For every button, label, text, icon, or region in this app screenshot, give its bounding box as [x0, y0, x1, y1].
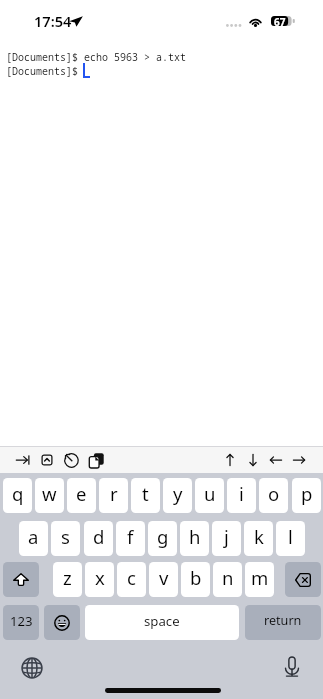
button[interactable]: f — [116, 521, 145, 556]
staticText: c — [127, 565, 136, 590]
button[interactable]: r — [99, 478, 128, 513]
button[interactable]: Paste — [85, 447, 107, 473]
button[interactable]: b — [181, 562, 210, 597]
staticText: k — [254, 524, 264, 549]
staticText: q — [12, 481, 24, 506]
staticText: g — [157, 524, 169, 549]
button[interactable]: v — [149, 562, 178, 597]
staticText: w — [42, 481, 57, 506]
staticText: 67 — [274, 15, 286, 29]
staticText: t — [142, 481, 149, 506]
staticText: [Documents]$ echo 5963 > a.txt — [6, 50, 186, 64]
staticText: a — [28, 524, 39, 549]
button[interactable]: Emoji — [44, 605, 80, 640]
button[interactable]: i — [227, 478, 256, 513]
staticText: 123 — [10, 612, 33, 630]
button[interactable]: l — [276, 521, 305, 556]
staticText: o — [268, 481, 280, 506]
button[interactable]: y — [163, 478, 192, 513]
button[interactable]: k — [244, 521, 273, 556]
staticText: b — [190, 565, 202, 590]
button[interactable]: m — [245, 562, 274, 597]
staticText: return — [264, 612, 302, 629]
button[interactable]: h — [180, 521, 209, 556]
staticText: v — [159, 565, 169, 590]
button[interactable]: Arrow down — [242, 447, 264, 473]
staticText: z — [63, 565, 72, 590]
staticText: j — [224, 524, 229, 549]
staticText: x — [95, 565, 105, 590]
button[interactable]: q — [3, 478, 32, 513]
button[interactable]: s — [51, 521, 80, 556]
staticText: d — [93, 524, 105, 549]
button[interactable]: o — [259, 478, 288, 513]
staticText: m — [251, 565, 269, 590]
button[interactable]: e — [67, 478, 96, 513]
button[interactable]: Arrow right — [288, 447, 310, 473]
button[interactable]: Shift — [3, 562, 39, 597]
button[interactable]: x — [85, 562, 114, 597]
button[interactable]: n — [213, 562, 242, 597]
button[interactable]: Arrow up — [219, 447, 241, 473]
button[interactable]: g — [148, 521, 177, 556]
staticText: y — [173, 481, 183, 506]
button[interactable]: Arrow left — [265, 447, 287, 473]
staticText: space — [144, 612, 180, 630]
staticText: 17:54 — [34, 11, 72, 31]
button[interactable]: History — [60, 447, 82, 473]
button[interactable]: Backspace — [285, 562, 321, 597]
staticText: i — [239, 481, 244, 506]
button[interactable]: Dictate — [280, 655, 304, 679]
staticText: r — [110, 481, 118, 506]
button[interactable]: p — [292, 478, 321, 513]
button[interactable]: w — [35, 478, 64, 513]
staticText: [Documents]$ — [6, 64, 84, 78]
button[interactable]: return — [245, 605, 321, 640]
button[interactable]: Tab — [12, 447, 34, 473]
button[interactable]: Control — [36, 447, 58, 473]
button[interactable]: 123 — [3, 605, 39, 640]
staticText: n — [222, 565, 234, 590]
staticText: u — [204, 481, 216, 506]
button[interactable]: z — [53, 562, 82, 597]
button[interactable]: Change keyboard — [20, 656, 44, 680]
button[interactable]: a — [19, 521, 48, 556]
staticText: e — [76, 481, 87, 506]
staticText: f — [127, 524, 134, 549]
staticText: p — [301, 481, 313, 506]
button[interactable]: j — [212, 521, 241, 556]
button[interactable]: d — [84, 521, 113, 556]
staticText: s — [61, 524, 70, 549]
button[interactable]: t — [131, 478, 160, 513]
staticText: h — [189, 524, 201, 549]
button[interactable]: space — [85, 605, 239, 640]
button[interactable]: c — [117, 562, 146, 597]
button[interactable]: u — [195, 478, 224, 513]
staticText: l — [288, 524, 293, 549]
